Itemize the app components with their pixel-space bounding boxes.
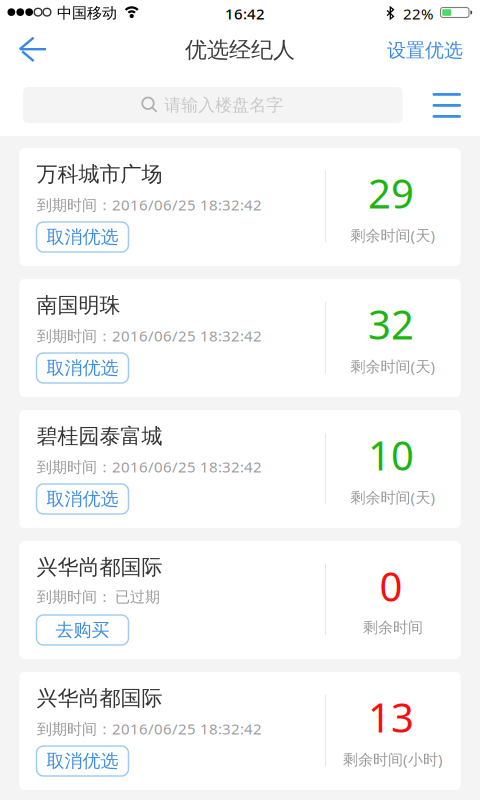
staticText: 剩余时间(天) bbox=[350, 487, 435, 507]
staticText: 南国明珠 bbox=[36, 292, 120, 318]
button[interactable]: 搜索 bbox=[23, 87, 402, 123]
staticText: 中国移动 bbox=[57, 3, 117, 22]
staticText: 剩余时间(天) bbox=[350, 225, 435, 245]
button[interactable]: 取消优选 bbox=[36, 222, 128, 252]
staticText: 32 bbox=[368, 297, 414, 351]
staticText: 剩余时间(小时) bbox=[343, 749, 443, 769]
button[interactable]: 筛选 bbox=[426, 87, 467, 124]
staticText: 优选经纪人 bbox=[185, 36, 295, 64]
staticText: 22% bbox=[403, 3, 433, 24]
staticText: 兴华尚都国际 bbox=[36, 554, 162, 580]
staticText: 到期时间：2016/06/25 18:32:42 bbox=[37, 194, 262, 215]
staticText: 10 bbox=[368, 428, 414, 482]
staticText: 取消优选 bbox=[46, 750, 118, 772]
staticText: 碧桂园泰富城 bbox=[36, 423, 162, 449]
staticText: 29 bbox=[368, 166, 414, 220]
staticText: 0 bbox=[379, 559, 402, 613]
button[interactable]: 返回 bbox=[0, 27, 46, 71]
staticText: 取消优选 bbox=[46, 226, 118, 248]
staticText: 16:42 bbox=[225, 3, 265, 24]
staticText: 剩余时间 bbox=[363, 618, 423, 637]
staticText: 到期时间：2016/06/25 18:32:42 bbox=[37, 456, 262, 477]
staticText: 设置优选 bbox=[387, 38, 463, 62]
button[interactable]: 设置优选 bbox=[387, 28, 479, 72]
button[interactable]: 取消优选 bbox=[36, 484, 128, 514]
button[interactable]: 取消优选 bbox=[36, 746, 128, 776]
staticText: 取消优选 bbox=[46, 488, 118, 510]
staticText: 万科城市广场 bbox=[36, 161, 162, 187]
staticText: 去购买 bbox=[55, 619, 109, 641]
staticText: 取消优选 bbox=[46, 357, 118, 379]
staticText: 13 bbox=[368, 690, 414, 744]
staticText: 请输入楼盘名字 bbox=[164, 94, 283, 116]
button[interactable]: 去购买 bbox=[36, 615, 128, 645]
staticText: 到期时间：2016/06/25 18:32:42 bbox=[37, 325, 262, 346]
staticText: 剩余时间(天) bbox=[350, 356, 435, 376]
staticText: 到期时间： 已过期 bbox=[37, 587, 160, 606]
staticText: 兴华尚都国际 bbox=[36, 685, 162, 711]
staticText: 到期时间：2016/06/25 18:32:42 bbox=[37, 718, 262, 739]
button[interactable]: 取消优选 bbox=[36, 353, 128, 383]
